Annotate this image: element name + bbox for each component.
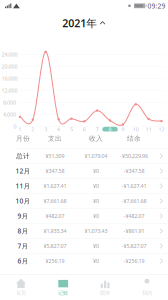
staticText: 9月 bbox=[17, 212, 28, 220]
staticText: ¥5,827.07 bbox=[43, 242, 66, 250]
staticText: 我的 bbox=[142, 290, 152, 296]
staticText: ¥0 bbox=[93, 257, 99, 265]
button[interactable]: 首页 bbox=[0, 275, 42, 299]
staticText: ¥0 bbox=[93, 182, 99, 190]
button[interactable]: 10月 bbox=[0, 193, 168, 208]
button[interactable]: 8月 bbox=[0, 223, 168, 238]
staticText: 6 bbox=[83, 126, 86, 133]
staticText: ¥482.07 bbox=[45, 212, 64, 220]
staticText: 记账 bbox=[58, 290, 68, 296]
staticText: 7月 bbox=[17, 242, 28, 250]
staticText: -¥7,661.68 bbox=[121, 197, 146, 205]
staticText: 24,000 bbox=[1, 51, 17, 58]
button[interactable]: 图表 bbox=[84, 275, 126, 299]
staticText: ¥1,935.34 bbox=[43, 227, 66, 235]
button[interactable]: 总计 bbox=[0, 148, 168, 163]
staticText: ¥51,309 bbox=[45, 152, 64, 160]
staticText: -¥50,229.96 bbox=[120, 152, 148, 160]
staticText: 收入 bbox=[89, 134, 103, 143]
staticText: ¥1,627.41 bbox=[43, 182, 66, 190]
staticText: -¥347.58 bbox=[123, 167, 144, 175]
staticText: ¥347.58 bbox=[45, 167, 64, 175]
staticText: 10月 bbox=[15, 197, 30, 205]
staticText: 16,000 bbox=[1, 75, 17, 82]
staticText: 12月 bbox=[15, 167, 30, 175]
button[interactable]: 6月 bbox=[0, 253, 168, 268]
staticText: 6月 bbox=[17, 257, 28, 265]
staticText: 11 bbox=[146, 126, 152, 133]
button[interactable]: 11月 bbox=[0, 178, 168, 193]
staticText: 5 bbox=[70, 126, 73, 133]
staticText: 1 bbox=[18, 126, 21, 133]
staticText: 8 bbox=[108, 126, 111, 133]
staticText: 8,000 bbox=[3, 99, 16, 106]
staticText: ¥1,079.04 bbox=[84, 152, 107, 160]
staticText: ¥0 bbox=[93, 197, 99, 205]
staticText: 11月 bbox=[15, 182, 30, 190]
staticText: -¥861.91 bbox=[123, 227, 144, 235]
staticText: 首页 bbox=[16, 290, 26, 296]
staticText: 8 bbox=[108, 126, 111, 133]
staticText: 8月 bbox=[17, 227, 28, 235]
staticText: ¥0 bbox=[93, 212, 99, 220]
staticText: 结余 bbox=[127, 134, 141, 143]
staticText: 9 bbox=[121, 126, 124, 133]
staticText: 2021年 bbox=[62, 16, 97, 30]
staticText: ¥7,661.68 bbox=[43, 197, 66, 205]
staticText: 0 bbox=[13, 123, 16, 130]
staticText: 3 bbox=[44, 126, 47, 133]
button[interactable]: 2021年 bbox=[62, 16, 106, 30]
staticText: -¥256.19 bbox=[123, 257, 144, 265]
staticText: 12,000 bbox=[1, 87, 17, 94]
staticText: ¥1,073.43 bbox=[84, 227, 107, 235]
staticText: 09:29 bbox=[147, 1, 165, 10]
staticText: -¥1,627.41 bbox=[121, 182, 146, 190]
staticText: 4,000 bbox=[3, 111, 16, 118]
button[interactable]: 7月 bbox=[0, 238, 168, 253]
staticText: 10 bbox=[133, 126, 139, 133]
staticText: 月份 bbox=[16, 134, 30, 143]
staticText: 支出 bbox=[48, 134, 62, 143]
staticText: 图表 bbox=[100, 290, 110, 296]
button[interactable]: 9月 bbox=[0, 208, 168, 223]
staticText: ¥0 bbox=[93, 167, 99, 175]
staticText: 4 bbox=[57, 126, 60, 133]
staticText: 12 bbox=[158, 126, 164, 133]
staticText: 20,000 bbox=[1, 63, 17, 70]
staticText: 7 bbox=[96, 126, 99, 133]
staticText: -¥5,827.07 bbox=[121, 242, 146, 250]
staticText: 2 bbox=[31, 126, 34, 133]
button[interactable]: 我的 bbox=[126, 275, 168, 299]
staticText: ¥256.19 bbox=[45, 257, 64, 265]
staticText: -¥482.07 bbox=[123, 212, 144, 220]
button[interactable]: 12月 bbox=[0, 163, 168, 178]
staticText: ¥0 bbox=[93, 242, 99, 250]
staticText: 总计 bbox=[16, 152, 30, 160]
button[interactable]: 记账 bbox=[42, 275, 84, 299]
